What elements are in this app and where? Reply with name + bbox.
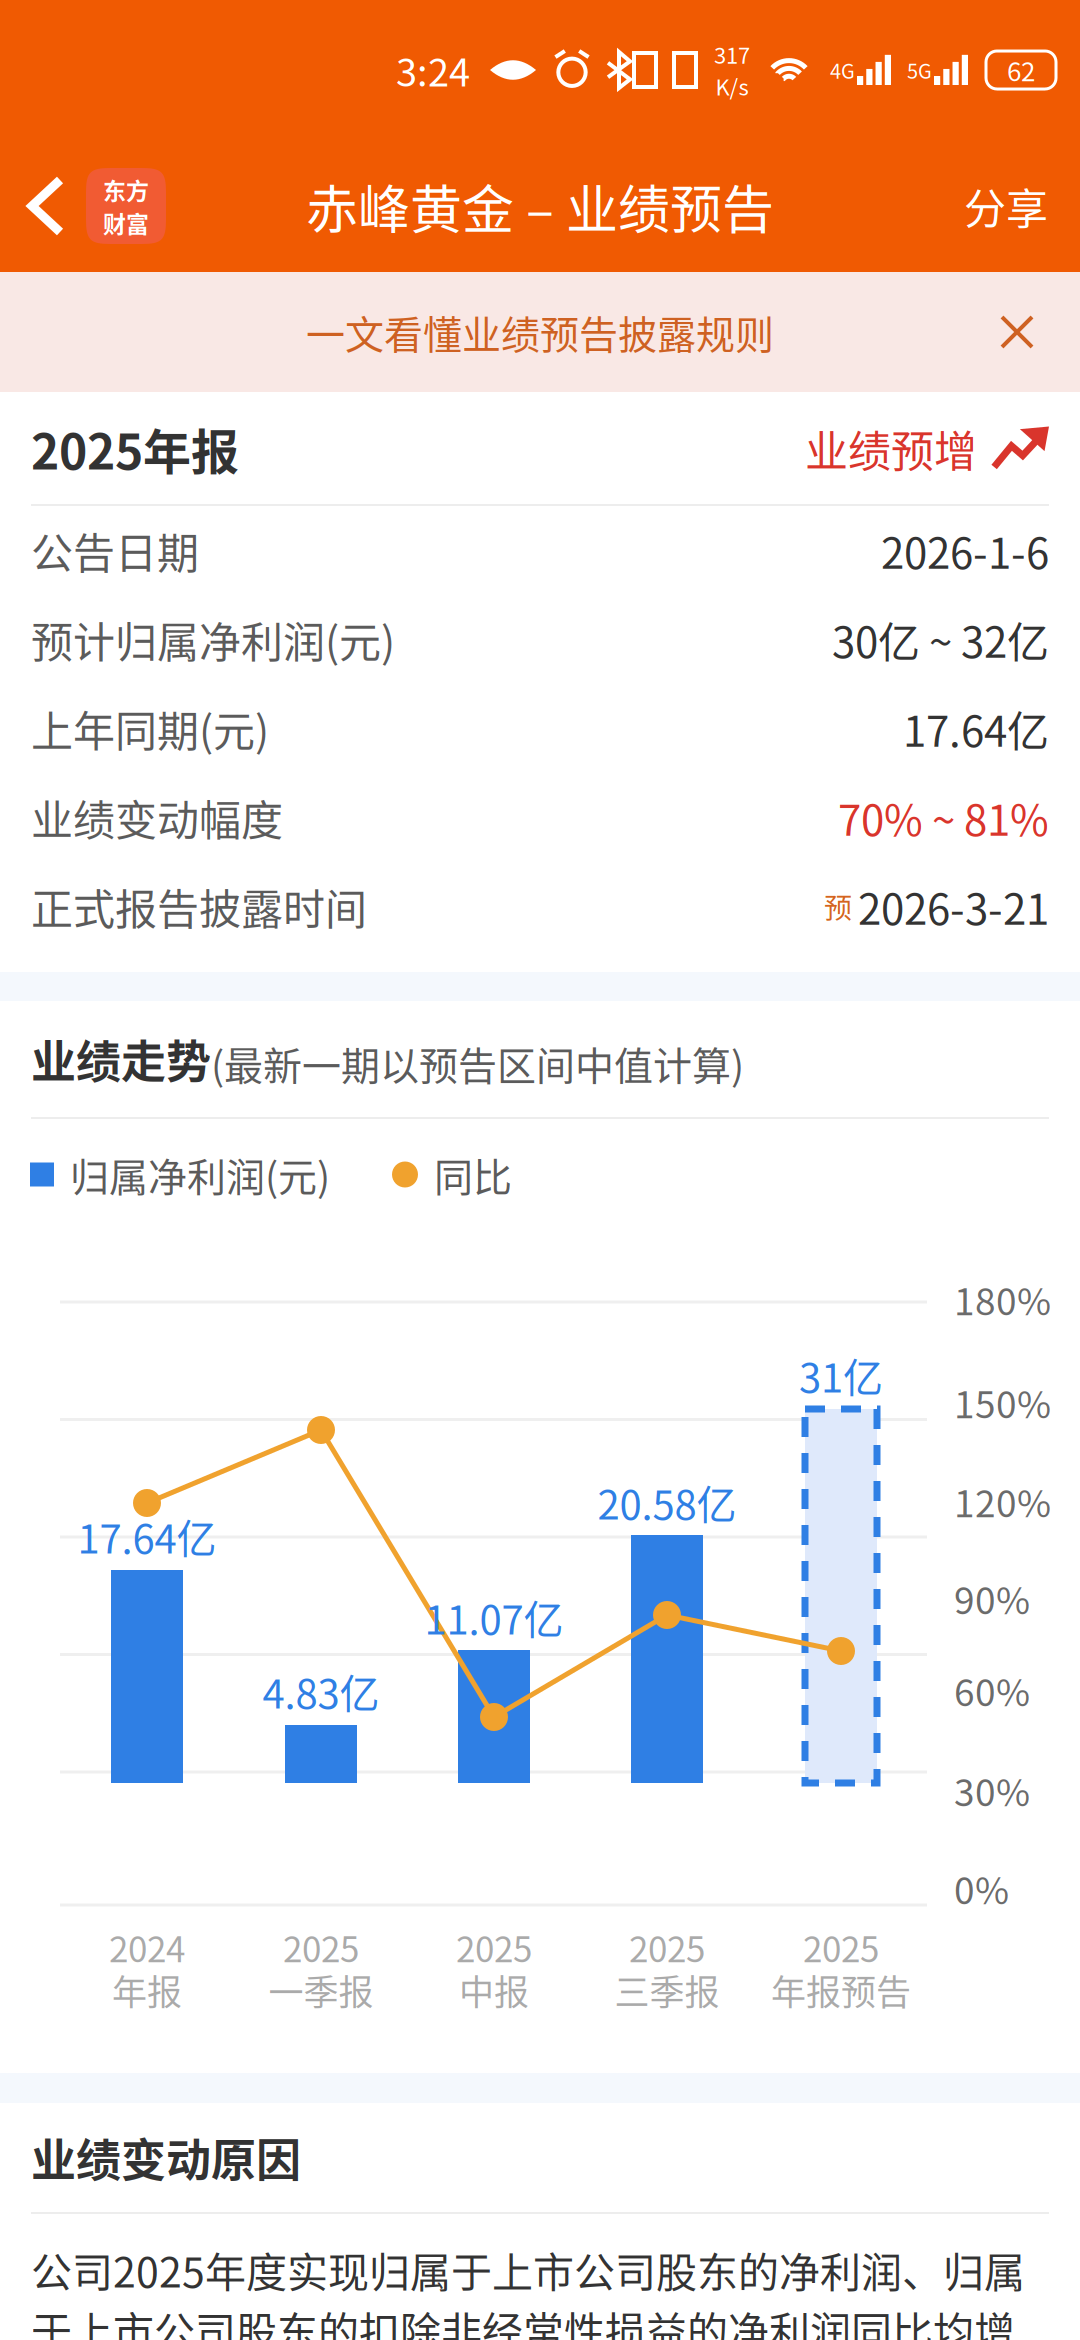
staticText: 业绩预增 <box>805 417 977 480</box>
button[interactable]: 东方财富 <box>86 168 166 244</box>
staticText: 公告日期 <box>31 520 199 581</box>
staticText: 2025 <box>803 1922 879 1972</box>
staticText: 317 <box>714 38 750 70</box>
staticText: 62 <box>1007 51 1035 89</box>
button[interactable]: 一文看懂业绩预告披露规则 <box>0 272 1080 392</box>
staticText: 2025 <box>629 1922 705 1972</box>
staticText: 三季报 <box>614 1965 719 2015</box>
staticText: 17.64亿 <box>77 1507 216 1565</box>
button[interactable]: 正式报告披露时间 <box>0 862 1080 951</box>
staticText: 中报 <box>459 1965 529 2015</box>
staticText: 财富 <box>103 206 149 239</box>
staticText: 预计归属净利润(元) <box>31 609 395 670</box>
staticText: 150% <box>954 1375 1051 1429</box>
staticText: 3:24 <box>396 42 470 97</box>
staticText: 180% <box>954 1272 1051 1326</box>
button[interactable]: 预计归属净利润(元) <box>0 595 1080 684</box>
staticText: 70% ~ 81% <box>838 787 1049 848</box>
staticText: 4G <box>830 55 855 84</box>
staticText: 年报预告 <box>771 1965 911 2015</box>
staticText: 分享 <box>964 176 1048 236</box>
staticText: 2026-3-21 <box>858 876 1049 937</box>
staticText: 公司2025年度实现归属于上市公司股东的净利润、归属于上市公司股东的扣除非经常性… <box>31 2240 1025 2340</box>
staticText: 90% <box>954 1571 1030 1625</box>
staticText: 预 <box>824 886 852 927</box>
staticText: 31亿 <box>799 1346 883 1404</box>
staticText: 20.58亿 <box>597 1473 736 1531</box>
staticText: 11.07亿 <box>424 1588 563 1646</box>
staticText: 赤峰黄金 – 业绩预告 <box>306 168 774 244</box>
staticText: 17.64亿 <box>903 698 1049 759</box>
staticText: 60% <box>954 1663 1030 1717</box>
staticText: 上年同期(元) <box>31 698 269 759</box>
button[interactable]: 业绩变动幅度 <box>0 773 1080 862</box>
staticText: 30% <box>954 1763 1030 1817</box>
staticText: 年报 <box>112 1965 182 2015</box>
staticText: 0% <box>954 1861 1009 1915</box>
staticText: 2025 <box>456 1922 532 1972</box>
staticText: 同比 <box>434 1146 512 1203</box>
staticText: 一文看懂业绩预告披露规则 <box>306 304 774 360</box>
staticText: (最新一期以预告区间中值计算) <box>211 1035 744 1092</box>
button[interactable]: 上年同期(元) <box>0 684 1080 773</box>
staticText: 业绩变动原因 <box>31 2125 301 2190</box>
staticText: K/s <box>715 70 748 102</box>
staticText: 一季报 <box>268 1965 373 2015</box>
staticText: 业绩走势 <box>31 1026 211 1092</box>
staticText: 业绩变动幅度 <box>31 787 283 848</box>
staticText: 2025 <box>283 1922 359 1972</box>
staticText: 5G <box>907 55 932 84</box>
button[interactable]: 公告日期 <box>0 506 1080 595</box>
staticText: 东方 <box>103 173 149 206</box>
staticText: 30亿 ~ 32亿 <box>832 609 1049 670</box>
staticText: 2026-1-6 <box>881 520 1049 581</box>
staticText: 归属净利润(元) <box>70 1146 330 1203</box>
button[interactable]: 分享 <box>932 140 1080 272</box>
staticText: 2025年报 <box>31 414 239 483</box>
staticText: 120% <box>954 1474 1051 1528</box>
staticText: 4.83亿 <box>262 1662 379 1720</box>
staticText: 2024 <box>109 1922 185 1972</box>
button[interactable]: 返回 <box>0 140 86 272</box>
staticText: 正式报告披露时间 <box>31 876 367 937</box>
